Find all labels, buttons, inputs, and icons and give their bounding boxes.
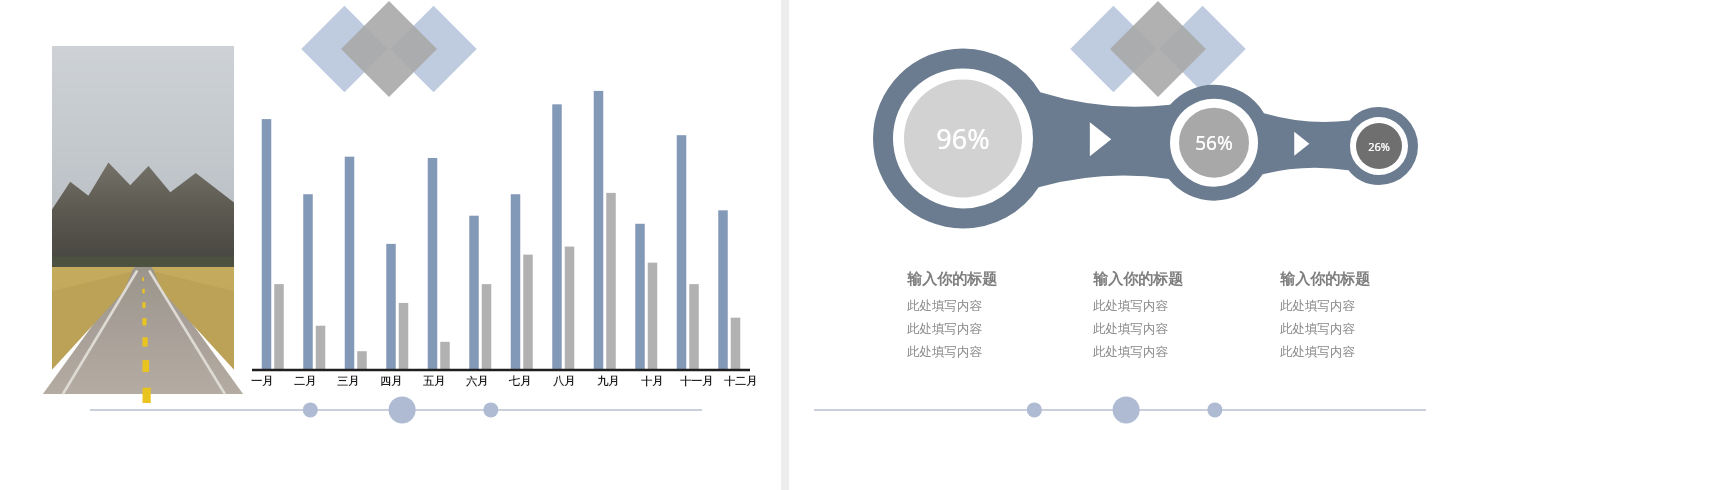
staticText: 输入你的标题 (1093, 270, 1183, 289)
button[interactable]: Progress chain 96, 56, 26 percent (869, 50, 1469, 220)
staticText: 五月 (423, 374, 445, 388)
staticText: 四月 (380, 374, 402, 388)
staticText: 输入你的标题 (1280, 270, 1370, 289)
staticText: 七月 (509, 374, 531, 388)
staticText: 八月 (553, 374, 575, 388)
staticText: 输入你的标题 (907, 270, 997, 289)
staticText: 此处填写内容 (1280, 321, 1355, 337)
button[interactable]: Road photograph (52, 46, 234, 394)
staticText: 二月 (294, 374, 316, 388)
staticText: 六月 (466, 374, 488, 388)
staticText: 此处填写内容 (1093, 321, 1168, 337)
staticText: 此处填写内容 (1280, 344, 1355, 360)
staticText: 此处填写内容 (1093, 344, 1168, 360)
staticText: 十一月 (680, 374, 713, 388)
staticText: 此处填写内容 (1280, 298, 1355, 314)
staticText: 此处填写内容 (907, 344, 982, 360)
staticText: 96% (936, 120, 990, 156)
staticText: 56% (1195, 130, 1233, 156)
staticText: 26% (1368, 139, 1390, 154)
staticText: 一月 (251, 374, 273, 388)
staticText: 此处填写内容 (907, 298, 982, 314)
staticText: 十二月 (724, 374, 757, 388)
staticText: 此处填写内容 (907, 321, 982, 337)
button[interactable]: 输入你的标题 (1093, 270, 1266, 367)
staticText: 三月 (337, 374, 359, 388)
staticText: 十月 (641, 374, 663, 388)
staticText: 九月 (597, 374, 619, 388)
button[interactable]: 输入你的标题 (907, 270, 1079, 367)
button[interactable]: 输入你的标题 (1280, 270, 1453, 367)
staticText: 此处填写内容 (1093, 298, 1168, 314)
